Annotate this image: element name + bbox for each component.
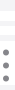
button[interactable]: Ben (0, 59, 15, 72)
button[interactable]: Ana (0, 46, 15, 59)
button[interactable]: Cleo (0, 72, 15, 85)
